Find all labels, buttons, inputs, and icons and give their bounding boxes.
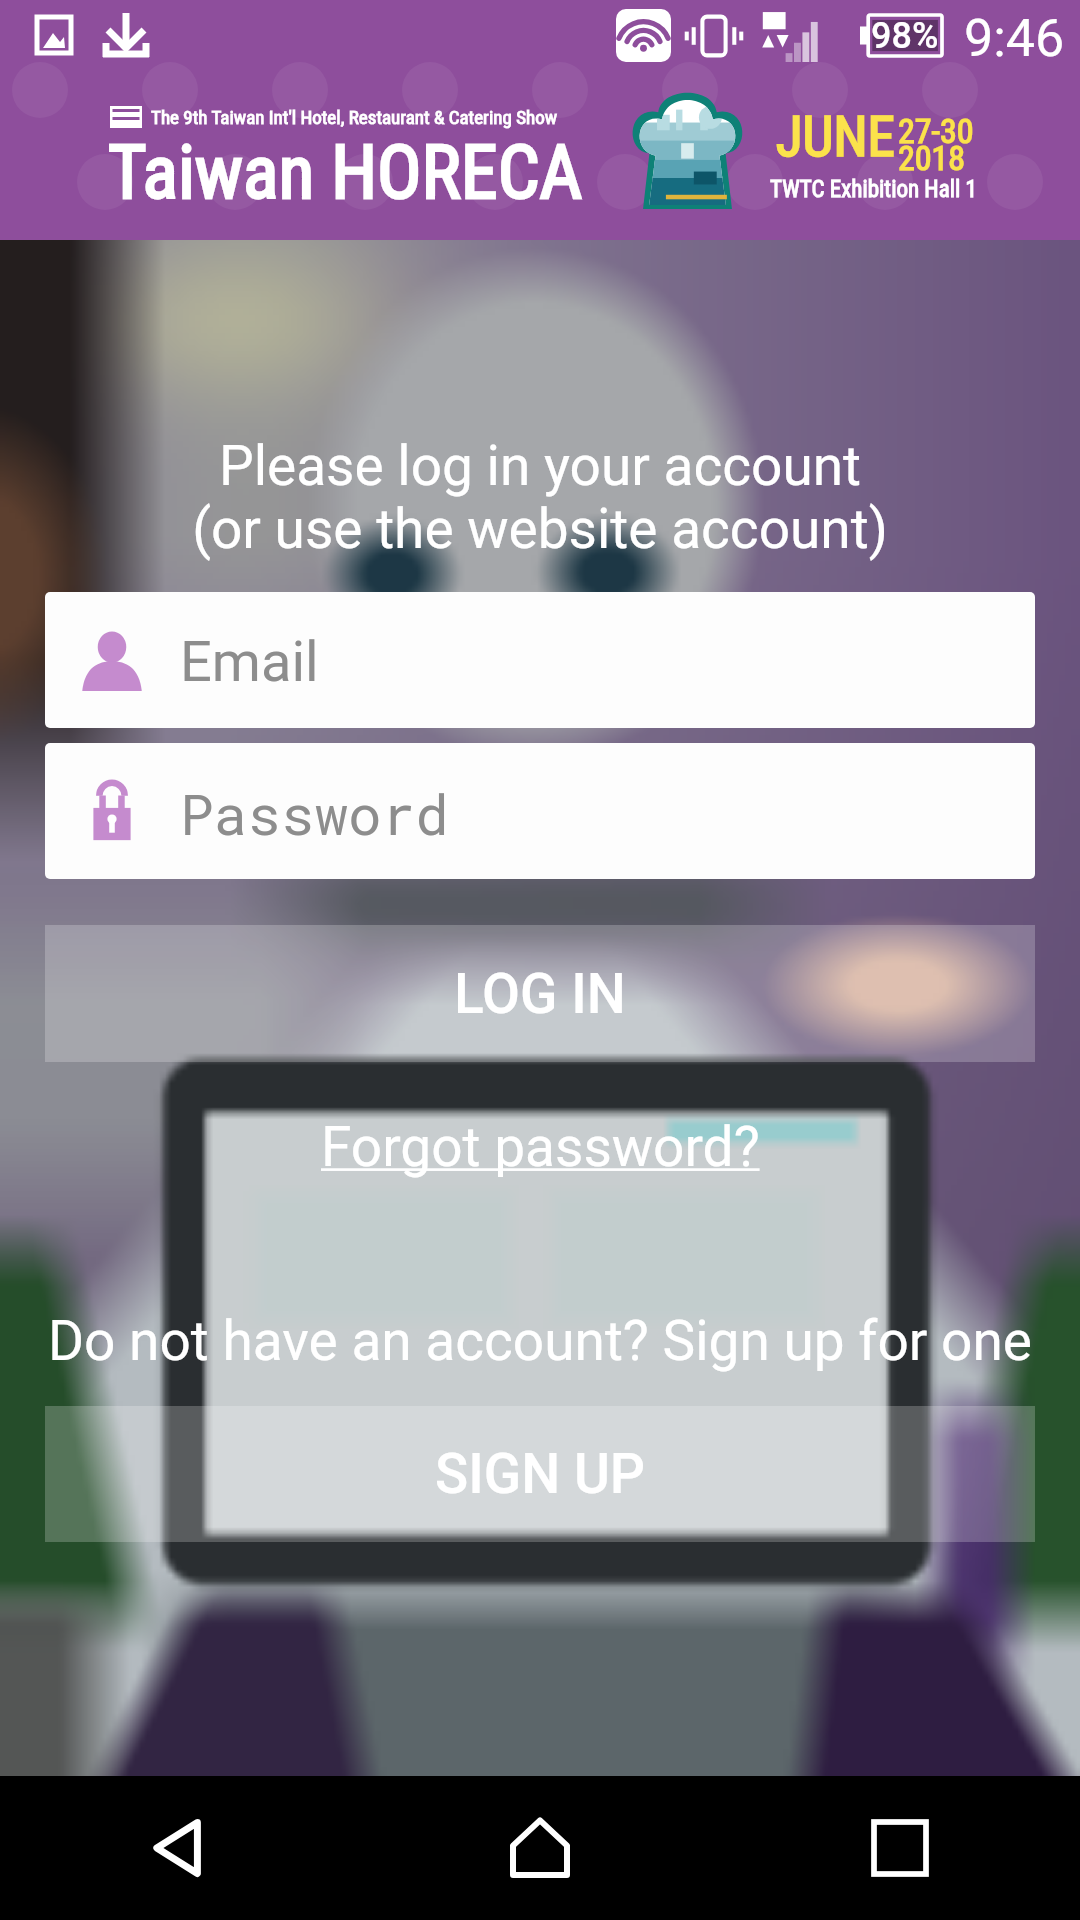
- button[interactable]: Password: [45, 743, 1035, 879]
- staticText: 9:46: [964, 8, 1065, 69]
- staticText: Email: [180, 629, 319, 695]
- staticText: TWTC Exhibition Hall 1: [770, 176, 977, 203]
- staticText: Taiwan HORECA: [108, 129, 583, 216]
- staticText: Please log in your account (or use the w…: [0, 434, 1080, 561]
- staticText: The 9th Taiwan Int'l Hotel, Restaurant &…: [151, 106, 558, 128]
- staticText: 98%: [871, 15, 939, 56]
- staticText: LOG IN: [454, 962, 626, 1026]
- staticText: 2018: [898, 138, 966, 178]
- button[interactable]: Back: [0, 1776, 360, 1920]
- button[interactable]: Email: [45, 592, 1035, 728]
- staticText: Do not have an account? Sign up for one: [48, 1309, 1032, 1373]
- button[interactable]: Forgot password?: [321, 1115, 760, 1179]
- button[interactable]: Recent apps: [720, 1776, 1080, 1920]
- button[interactable]: SIGN UP: [45, 1406, 1035, 1542]
- staticText: SIGN UP: [435, 1442, 646, 1506]
- staticText: JUNE: [776, 105, 895, 169]
- button[interactable]: Home: [360, 1776, 720, 1920]
- staticText: 27-30: [898, 111, 974, 151]
- staticText: Password: [180, 776, 449, 850]
- button[interactable]: LOG IN: [45, 925, 1035, 1062]
